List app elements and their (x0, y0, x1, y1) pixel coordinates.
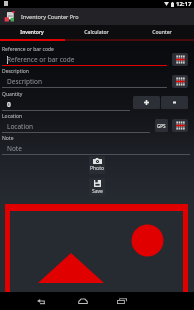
button[interactable]: GPS (155, 119, 168, 132)
staticText: Counter (152, 29, 172, 36)
staticText: Calculator (84, 29, 109, 36)
staticText: Inventory (20, 29, 44, 36)
staticText: Quantity (2, 91, 23, 98)
staticText: Reference or bar code (7, 55, 75, 64)
staticText: GPS (157, 123, 166, 129)
button[interactable]: Scan barcode (172, 75, 188, 88)
button[interactable]: Counter (129, 25, 194, 39)
button[interactable]: Back (28, 292, 56, 310)
staticText: Location (2, 113, 23, 120)
button[interactable]: Calculator (64, 25, 129, 39)
button[interactable]: Increase quantity (133, 96, 160, 109)
staticText: Description (2, 68, 29, 75)
button[interactable]: Inventory (0, 25, 64, 39)
button[interactable]: Home (69, 292, 97, 310)
staticText: Reference or bar code (2, 46, 54, 53)
staticText: Location (7, 122, 34, 131)
staticText: Save (92, 188, 103, 195)
button[interactable]: Scan barcode (172, 53, 188, 66)
button[interactable]: Save (89, 178, 105, 196)
button[interactable]: Photo (89, 156, 105, 174)
staticText: Note (2, 135, 14, 142)
staticText: Description (7, 77, 42, 86)
staticText: 0 (7, 100, 11, 109)
staticText: 12:17 (176, 0, 192, 8)
staticText: Photo (90, 165, 104, 172)
staticText: Inventory Counter Pro (21, 13, 79, 20)
button[interactable]: Decrease quantity (161, 96, 188, 109)
staticText: Note (7, 144, 22, 153)
button[interactable]: Scan barcode (172, 119, 188, 132)
button[interactable]: Recents (108, 292, 136, 310)
